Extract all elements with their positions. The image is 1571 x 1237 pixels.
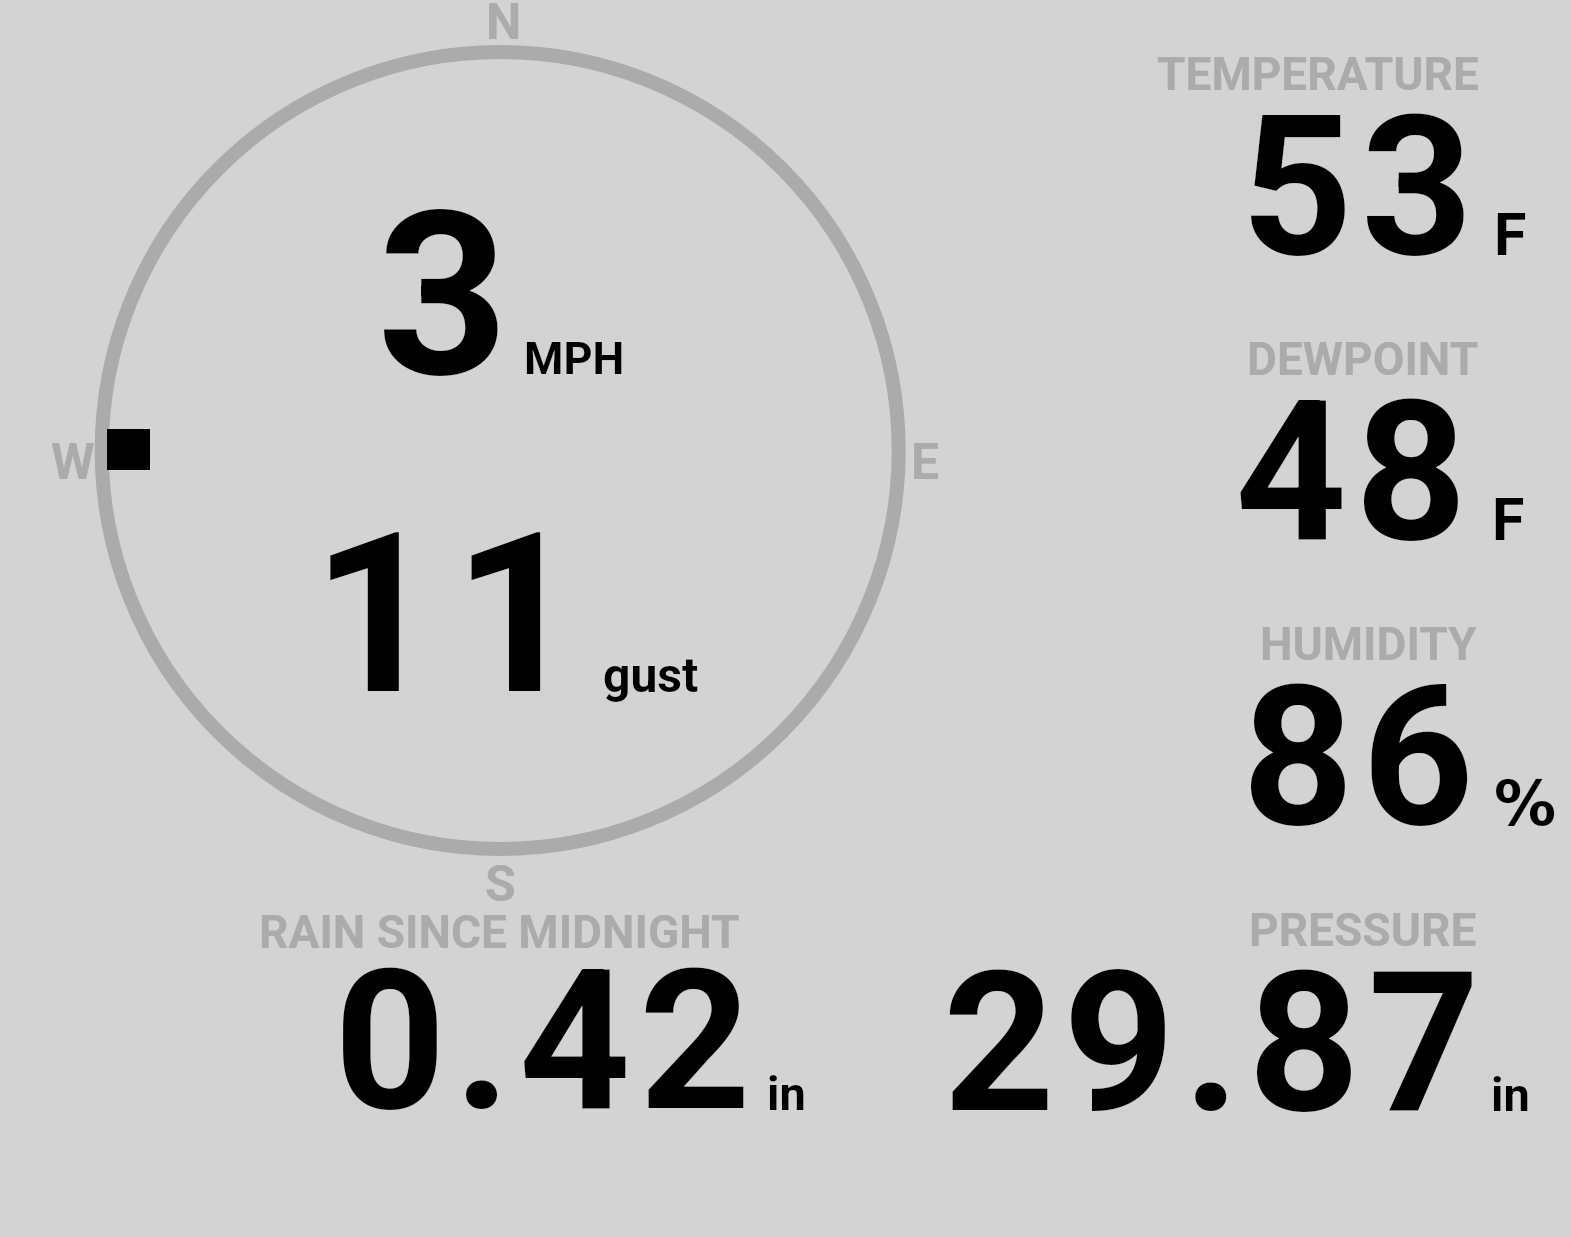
- button[interactable]: RAIN SINCE MIDNIGHT: [30, 856, 820, 1126]
- button[interactable]: PRESSURE: [830, 856, 1571, 1126]
- staticText: PRESSURE: [1249, 903, 1477, 957]
- staticText: F: [1494, 200, 1527, 269]
- staticText: S: [485, 855, 516, 914]
- staticText: N: [486, 0, 522, 52]
- staticText: MPH: [524, 332, 625, 385]
- staticText: 11: [312, 485, 595, 745]
- staticText: 53: [1241, 73, 1482, 302]
- staticText: 3: [377, 162, 509, 430]
- staticText: 86: [1242, 643, 1483, 872]
- staticText: F: [1492, 485, 1525, 554]
- staticText: E: [911, 433, 940, 492]
- staticText: in: [767, 1066, 806, 1121]
- staticText: DEWPOINT: [1247, 332, 1479, 386]
- button[interactable]: HUMIDITY: [1020, 570, 1571, 840]
- staticText: HUMIDITY: [1260, 617, 1477, 671]
- button[interactable]: DEWPOINT: [1020, 285, 1571, 555]
- staticText: in: [1491, 1067, 1530, 1122]
- staticText: TEMPERATURE: [1157, 47, 1479, 101]
- staticText: 48: [1235, 358, 1476, 587]
- staticText: gust: [603, 647, 699, 703]
- button[interactable]: Wind speed and direction: [0, 0, 1000, 915]
- staticText: 29.87: [943, 929, 1489, 1158]
- staticText: W: [51, 433, 95, 492]
- button[interactable]: TEMPERATURE: [1020, 0, 1571, 270]
- staticText: 0.42: [334, 927, 759, 1156]
- staticText: RAIN SINCE MIDNIGHT: [259, 905, 740, 959]
- staticText: %: [1494, 767, 1557, 839]
